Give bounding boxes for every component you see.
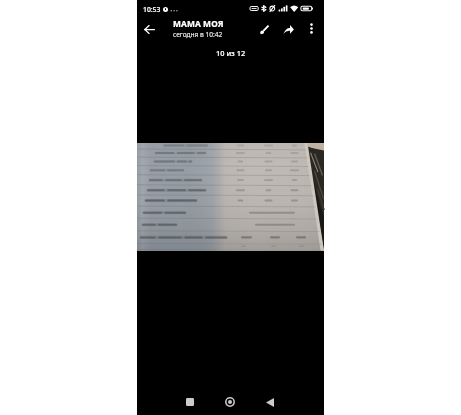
staticText: 10:53 <box>143 5 161 14</box>
button[interactable]: Back <box>140 20 158 38</box>
staticText: сегодня в 10:42 <box>173 30 223 39</box>
button[interactable]: Edit <box>255 20 273 38</box>
button[interactable]: Share <box>279 20 297 38</box>
staticText: 10 из 12 <box>216 48 246 58</box>
button[interactable]: Home <box>219 391 241 413</box>
button[interactable]: Recents <box>179 391 201 413</box>
button[interactable]: More options <box>303 20 320 37</box>
staticText: МАМА МОЯ <box>173 18 224 29</box>
button[interactable]: Back <box>259 391 281 413</box>
